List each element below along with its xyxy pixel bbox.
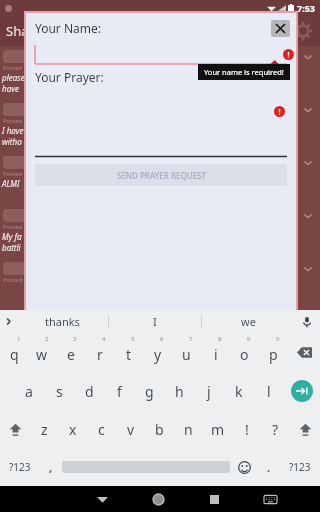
staticText: 7:53 (297, 2, 315, 14)
button[interactable]: Space (62, 454, 230, 480)
staticText: f (117, 382, 122, 401)
staticText: My fa (2, 231, 22, 242)
button[interactable]: 0 (259, 333, 288, 372)
button[interactable]: Comma (40, 448, 62, 486)
button[interactable]: 7 (172, 333, 201, 372)
button[interactable]: Home (130, 486, 186, 512)
button[interactable]: Expand suggestions (0, 310, 16, 333)
staticText: e (67, 345, 75, 364)
staticText: we (241, 314, 256, 329)
staticText: Posted (3, 276, 23, 284)
button[interactable]: l (254, 372, 284, 410)
staticText: v (127, 420, 135, 439)
button[interactable]: Voice input (294, 310, 320, 333)
staticText: 8 (218, 335, 222, 343)
staticText: l (267, 382, 271, 401)
button[interactable]: 2 (28, 333, 56, 372)
staticText: 5 (131, 335, 135, 343)
staticText: I (153, 314, 157, 329)
staticText: j (207, 382, 211, 401)
button[interactable]: 5 (114, 333, 143, 372)
button[interactable]: v (116, 410, 145, 448)
staticText: b (155, 420, 164, 439)
button[interactable]: 6 (143, 333, 172, 372)
staticText: 6 (160, 335, 164, 343)
button[interactable]: d (74, 372, 104, 410)
button[interactable]: SEND PRAYER REQUEST (35, 164, 287, 186)
button[interactable]: k (224, 372, 254, 410)
staticText: battli (2, 242, 21, 253)
staticText: witho (2, 136, 22, 147)
staticText: o (240, 345, 249, 364)
staticText: y (154, 345, 162, 364)
button[interactable]: g (134, 372, 164, 410)
staticText: Sha (6, 22, 29, 40)
button[interactable]: ! (232, 410, 261, 448)
staticText: 1 (17, 335, 21, 343)
staticText: ? (272, 420, 279, 439)
staticText: 0 (276, 335, 280, 343)
button[interactable]: f (104, 372, 134, 410)
button[interactable]: we (202, 310, 294, 333)
button[interactable]: Backspace (288, 333, 320, 372)
button[interactable]: 3 (56, 333, 85, 372)
staticText: g (145, 382, 154, 401)
staticText: r (97, 345, 103, 364)
staticText: thanks (45, 314, 80, 329)
staticText: 7 (189, 335, 193, 343)
button[interactable]: Close (271, 20, 290, 37)
button[interactable]: m (203, 410, 232, 448)
staticText: Posted (3, 64, 23, 72)
button[interactable]: b (145, 410, 174, 448)
staticText: t (126, 345, 132, 364)
button[interactable]: n (174, 410, 203, 448)
button[interactable]: s (44, 372, 74, 410)
staticText: have (2, 83, 19, 94)
button[interactable]: I (109, 310, 201, 333)
button[interactable]: Recents (186, 486, 242, 512)
button[interactable]: x (58, 410, 87, 448)
button[interactable]: c (87, 410, 116, 448)
staticText: ! (245, 420, 249, 439)
button[interactable]: ?123 (0, 448, 40, 486)
button[interactable]: Settings (292, 20, 314, 42)
button[interactable]: Period (258, 448, 280, 486)
staticText: Posted (3, 170, 23, 178)
button[interactable]: ? (261, 410, 290, 448)
button[interactable]: thanks (16, 310, 108, 333)
button[interactable]: 9 (230, 333, 259, 372)
button[interactable]: j (194, 372, 224, 410)
button[interactable]: z (30, 410, 58, 448)
staticText: . (267, 460, 271, 475)
staticText: c (98, 420, 105, 439)
staticText: Your Prayer: (35, 69, 104, 85)
button[interactable]: Back (74, 486, 130, 512)
staticText: p (269, 345, 278, 364)
staticText: ?123 (9, 460, 31, 474)
button[interactable]: 8 (201, 333, 230, 372)
staticText: please (2, 72, 25, 83)
button[interactable]: ?123 (280, 448, 320, 486)
staticText: h (175, 382, 184, 401)
staticText: 3 (73, 335, 77, 343)
button[interactable]: Emoji (230, 448, 258, 486)
button[interactable]: Shift (0, 410, 30, 448)
button[interactable]: h (164, 372, 194, 410)
button[interactable]: Enter (284, 372, 320, 410)
staticText: Your name is required! (204, 67, 284, 77)
staticText: z (41, 420, 48, 439)
staticText: u (182, 345, 191, 364)
staticText: k (235, 382, 243, 401)
button[interactable]: 1 (0, 333, 28, 372)
staticText: q (10, 345, 19, 364)
button[interactable]: 4 (85, 333, 114, 372)
staticText: x (69, 420, 77, 439)
staticText: 4 (102, 335, 106, 343)
staticText: Posted (3, 223, 23, 231)
button[interactable]: a (14, 372, 44, 410)
staticText: , (49, 460, 53, 475)
button[interactable]: Switch keyboard (242, 486, 298, 512)
staticText: 9 (247, 335, 251, 343)
button[interactable]: Shift (290, 410, 320, 448)
staticText: ALMI (2, 178, 20, 189)
